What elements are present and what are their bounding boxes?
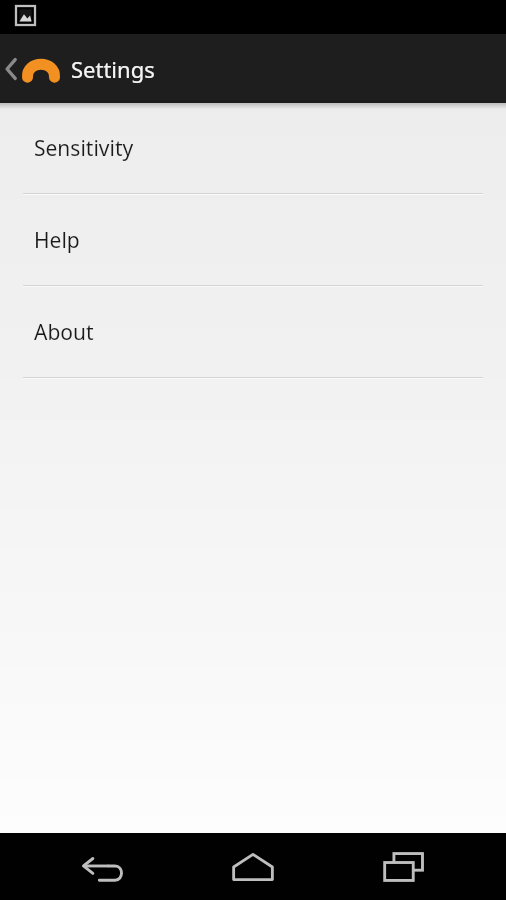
staticText: About (34, 318, 94, 347)
button[interactable]: Help (0, 195, 506, 287)
button[interactable]: About (0, 287, 506, 379)
button[interactable]: Sensitivity (0, 103, 506, 195)
button[interactable]: Navigate up (0, 34, 66, 103)
staticText: Help (34, 226, 80, 255)
button[interactable]: Home (205, 833, 301, 900)
staticText: Settings (71, 54, 155, 84)
button[interactable]: Back (55, 833, 151, 900)
button[interactable]: Recent apps (356, 833, 452, 900)
staticText: Sensitivity (34, 134, 134, 163)
